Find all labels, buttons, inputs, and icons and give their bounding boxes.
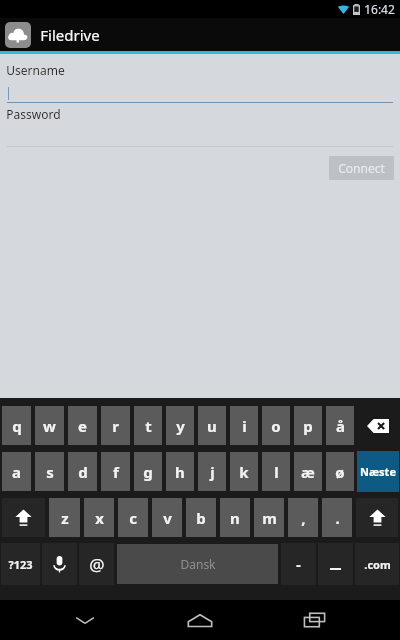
staticText: Password — [6, 106, 61, 122]
button[interactable]: Backspace — [356, 404, 400, 447]
staticText: p — [303, 416, 313, 436]
staticText: Næste — [360, 464, 396, 479]
button[interactable]: æ — [294, 452, 322, 491]
button[interactable]: - — [281, 543, 316, 585]
button[interactable]: , — [288, 498, 318, 537]
button[interactable]: c — [118, 498, 148, 537]
button[interactable]: p — [294, 406, 322, 445]
button[interactable]: r — [101, 406, 130, 445]
button[interactable]: j — [198, 452, 226, 491]
staticText: z — [61, 508, 69, 528]
staticText: ?123 — [8, 557, 33, 572]
staticText: b — [196, 508, 206, 528]
button[interactable] — [7, 129, 393, 147]
staticText: s — [46, 462, 54, 482]
button[interactable]: ?123 — [1, 543, 40, 585]
button[interactable]: i — [230, 406, 258, 445]
button[interactable]: s — [35, 452, 64, 491]
button[interactable]: n — [220, 498, 250, 537]
button[interactable]: @ — [79, 543, 114, 585]
staticText: t — [145, 416, 152, 436]
button[interactable] — [7, 84, 393, 103]
button[interactable]: e — [68, 406, 97, 445]
button[interactable]: .com — [355, 543, 399, 585]
staticText: g — [143, 462, 153, 482]
staticText: å — [336, 416, 345, 436]
button[interactable]: m — [254, 498, 284, 537]
staticText: c — [129, 508, 137, 528]
staticText: j — [210, 462, 215, 482]
button[interactable]: Filedrive app icon — [5, 22, 31, 48]
staticText: v — [163, 508, 172, 528]
button[interactable]: Hide keyboard — [55, 600, 115, 640]
button[interactable]: Shift — [2, 498, 45, 537]
staticText: x — [95, 508, 104, 528]
staticText: r — [112, 416, 119, 436]
button[interactable]: Shift — [356, 498, 398, 537]
button[interactable]: ø — [326, 452, 354, 491]
button[interactable]: . — [322, 498, 352, 537]
button[interactable]: u — [198, 406, 226, 445]
staticText: @ — [89, 553, 105, 576]
staticText: .com — [364, 557, 391, 572]
staticText: l — [274, 462, 279, 482]
staticText: Username — [6, 62, 65, 78]
staticText: - — [296, 555, 301, 574]
staticText: , — [301, 508, 306, 528]
button[interactable]: Recent apps — [285, 600, 345, 640]
staticText: m — [262, 508, 277, 528]
staticText: n — [230, 508, 240, 528]
staticText: æ — [301, 462, 315, 482]
button[interactable]: b — [186, 498, 216, 537]
staticText: f — [113, 462, 119, 482]
staticText: e — [78, 416, 87, 436]
button[interactable]: Voice input — [42, 543, 77, 585]
button[interactable]: z — [49, 498, 80, 537]
button[interactable]: Næste — [357, 451, 399, 492]
button[interactable]: g — [134, 452, 162, 491]
staticText: o — [271, 416, 281, 436]
staticText: Connect — [338, 160, 385, 176]
button[interactable]: t — [134, 406, 162, 445]
staticText: d — [78, 462, 88, 482]
button[interactable]: k — [230, 452, 258, 491]
staticText: w — [43, 416, 56, 436]
staticText: i — [242, 416, 247, 436]
button[interactable]: o — [262, 406, 290, 445]
button[interactable]: a — [2, 452, 31, 491]
staticText: k — [239, 462, 249, 482]
staticText: a — [12, 462, 21, 482]
staticText: q — [12, 416, 22, 436]
button[interactable]: q — [2, 406, 31, 445]
staticText: y — [176, 416, 185, 436]
button[interactable]: Space — [117, 544, 278, 584]
button[interactable]: Home — [170, 600, 230, 640]
button[interactable]: d — [68, 452, 97, 491]
button[interactable]: v — [152, 498, 182, 537]
staticText: 16:42 — [364, 1, 395, 17]
button[interactable]: å — [326, 406, 354, 445]
button[interactable]: y — [166, 406, 194, 445]
button[interactable]: h — [166, 452, 194, 491]
button[interactable]: l — [262, 452, 290, 491]
button[interactable]: Connect — [329, 156, 394, 180]
button[interactable]: x — [84, 498, 114, 537]
staticText: ø — [335, 462, 345, 482]
staticText: u — [207, 416, 217, 436]
button[interactable]: f — [101, 452, 130, 491]
staticText: h — [175, 462, 185, 482]
staticText: . — [335, 508, 340, 528]
button[interactable]: w — [35, 406, 64, 445]
staticText: Filedrive — [40, 25, 100, 45]
button[interactable] — [318, 543, 353, 585]
staticText: Dansk — [180, 556, 216, 572]
